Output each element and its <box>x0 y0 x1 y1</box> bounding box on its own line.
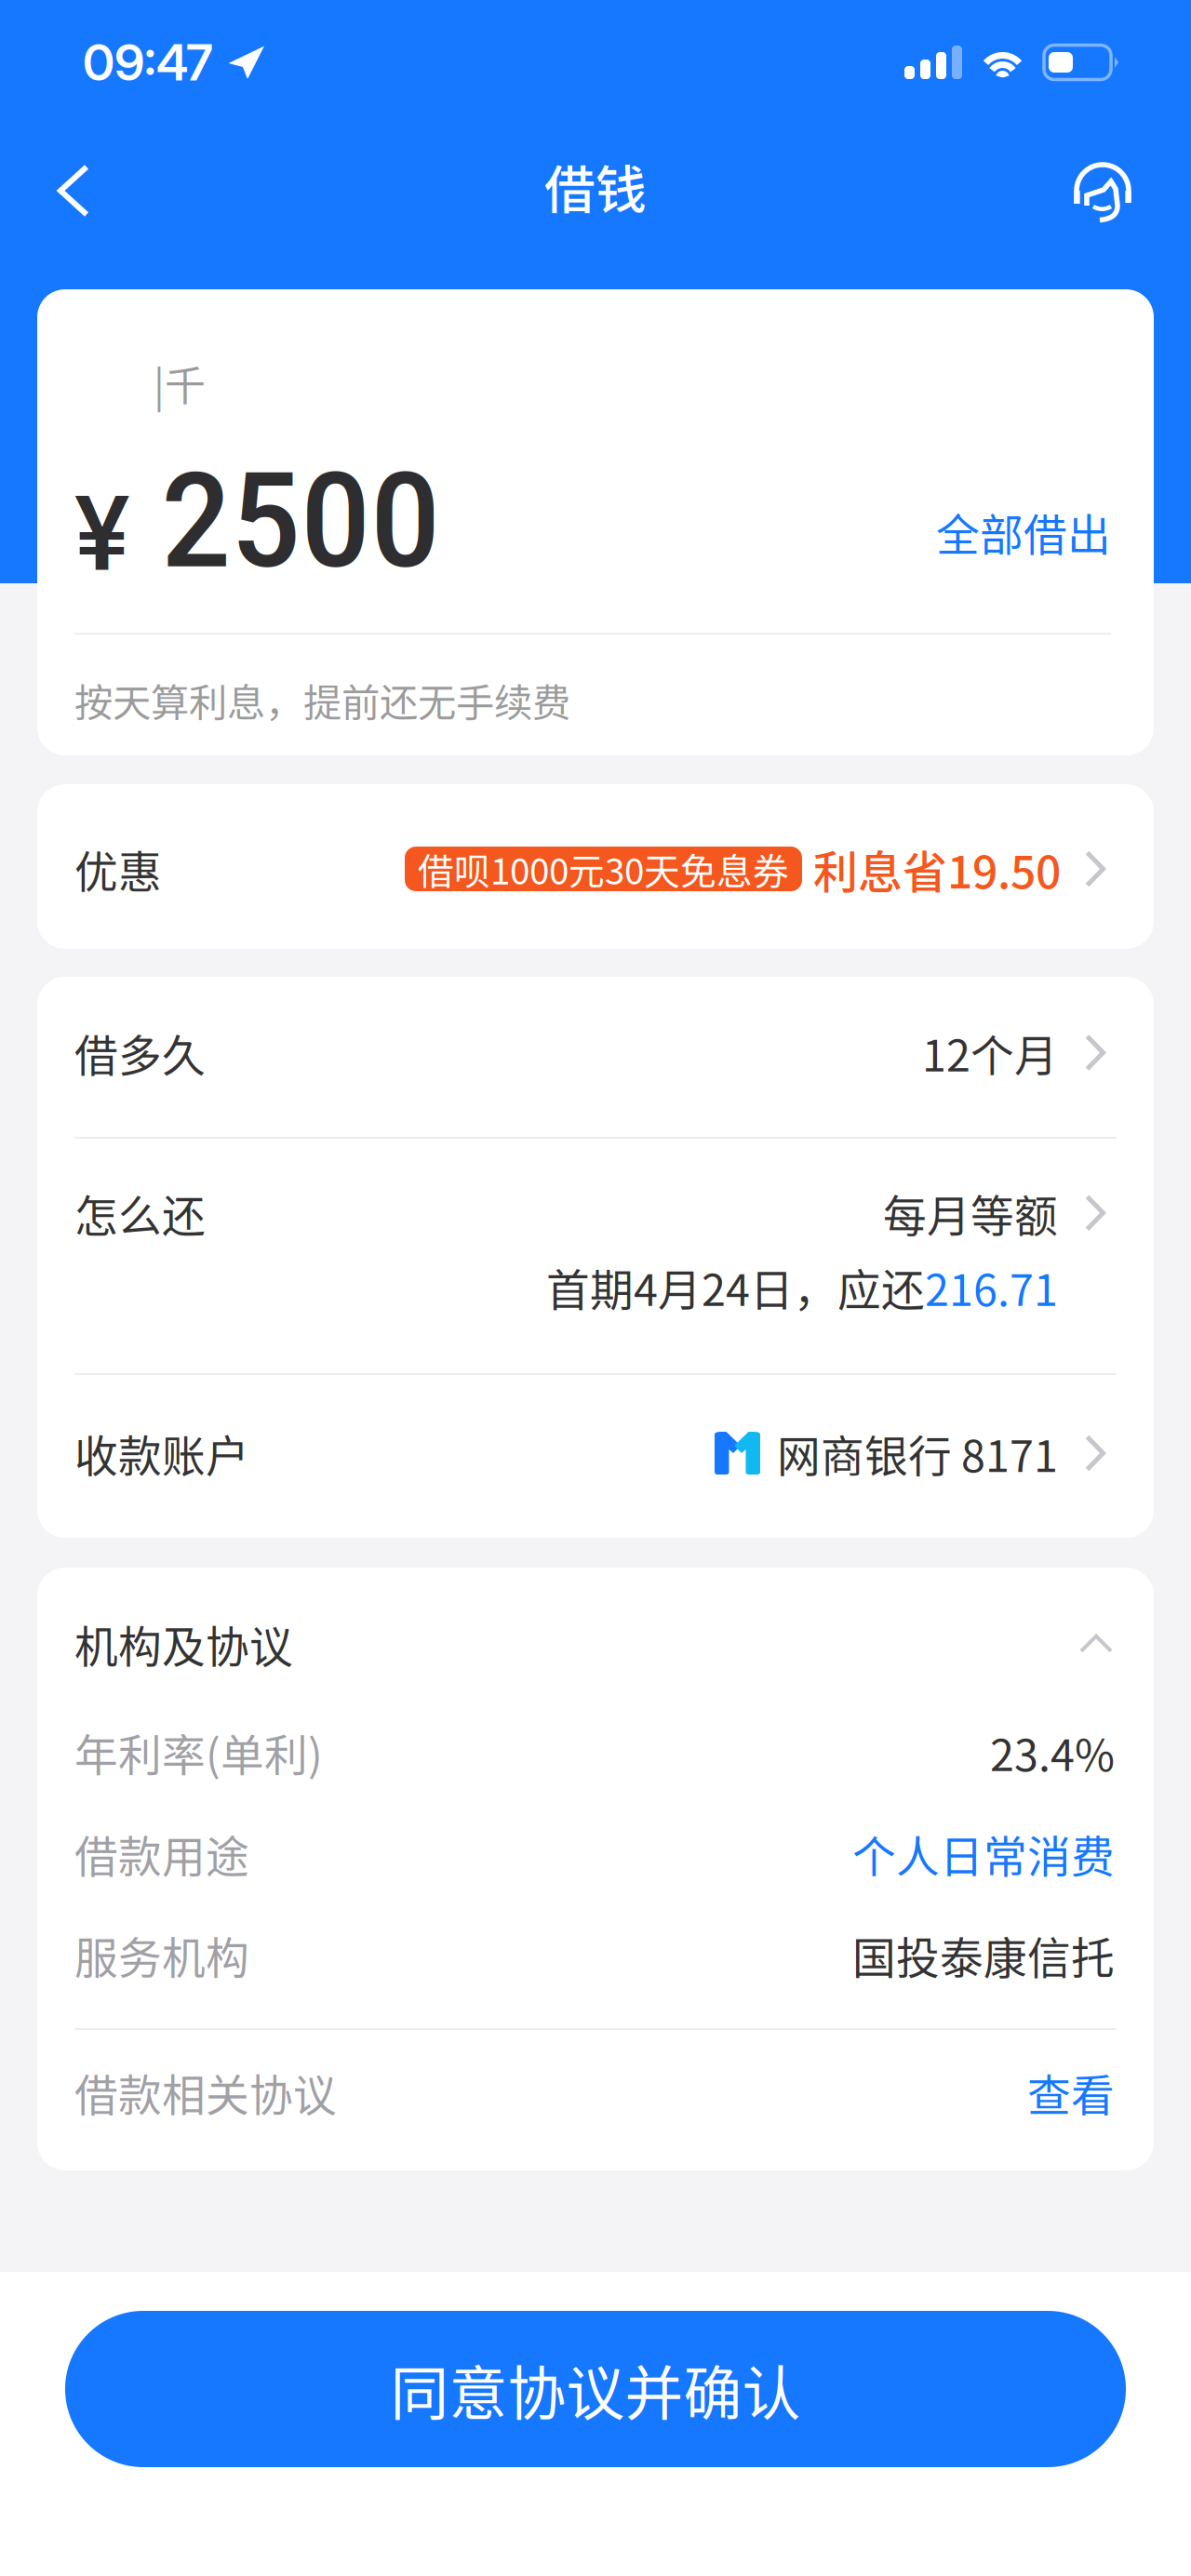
staticText: 收款账户 <box>74 1422 249 1485</box>
staticText: 机构及协议 <box>74 1612 293 1675</box>
staticText: 查看 <box>1027 2061 1115 2124</box>
staticText: 2500 <box>161 444 440 598</box>
button[interactable]: 机构及协议 <box>37 1568 1154 1702</box>
staticText: 借钱 <box>544 149 647 223</box>
staticText: 网商银行 8171 <box>777 1422 1058 1485</box>
button[interactable]: 收款账户 <box>37 1375 1154 1539</box>
staticText: 216.71 <box>925 1256 1058 1318</box>
staticText: 每月等额 <box>883 1181 1058 1244</box>
button[interactable]: 返回 <box>30 135 117 237</box>
staticText: 借多久 <box>74 1021 206 1084</box>
button[interactable]: 全部借出 <box>936 500 1111 599</box>
staticText: 个人日常消费 <box>852 1822 1115 1885</box>
staticText: 怎么还 <box>74 1181 206 1244</box>
button[interactable]: 同意协议并确认 <box>65 2311 1126 2467</box>
button[interactable]: 怎么还 <box>37 1139 1154 1373</box>
staticText: 国投泰康信托 <box>852 1924 1115 1986</box>
staticText: 服务机构 <box>74 1924 249 1986</box>
staticText: 09:47 <box>83 32 213 92</box>
staticText: ¥ <box>74 473 130 595</box>
staticText: 23.4% <box>990 1721 1115 1784</box>
staticText: 借款用途 <box>74 1822 249 1885</box>
button[interactable]: 借款相关协议 <box>37 2030 1154 2169</box>
staticText: 借呗1000元30天免息券 <box>418 843 789 895</box>
staticText: 12个月 <box>922 1021 1058 1084</box>
staticText: 全部借出 <box>936 500 1111 563</box>
button[interactable]: 优惠 <box>37 784 1154 949</box>
staticText: |千 <box>154 354 206 413</box>
button[interactable]: 在线客服 <box>1059 135 1146 237</box>
staticText: 同意协议并确认 <box>390 2347 801 2431</box>
staticText: 年利率(单利) <box>74 1721 323 1784</box>
button[interactable]: 借多久 <box>37 976 1154 1137</box>
staticText: 优惠 <box>74 837 162 900</box>
staticText: 借款相关协议 <box>74 2061 337 2124</box>
staticText: 首期4月24日，应还 <box>546 1256 925 1318</box>
staticText: 按天算利息，提前还无手续费 <box>74 672 570 728</box>
staticText: 利息省19.50 <box>813 837 1061 901</box>
